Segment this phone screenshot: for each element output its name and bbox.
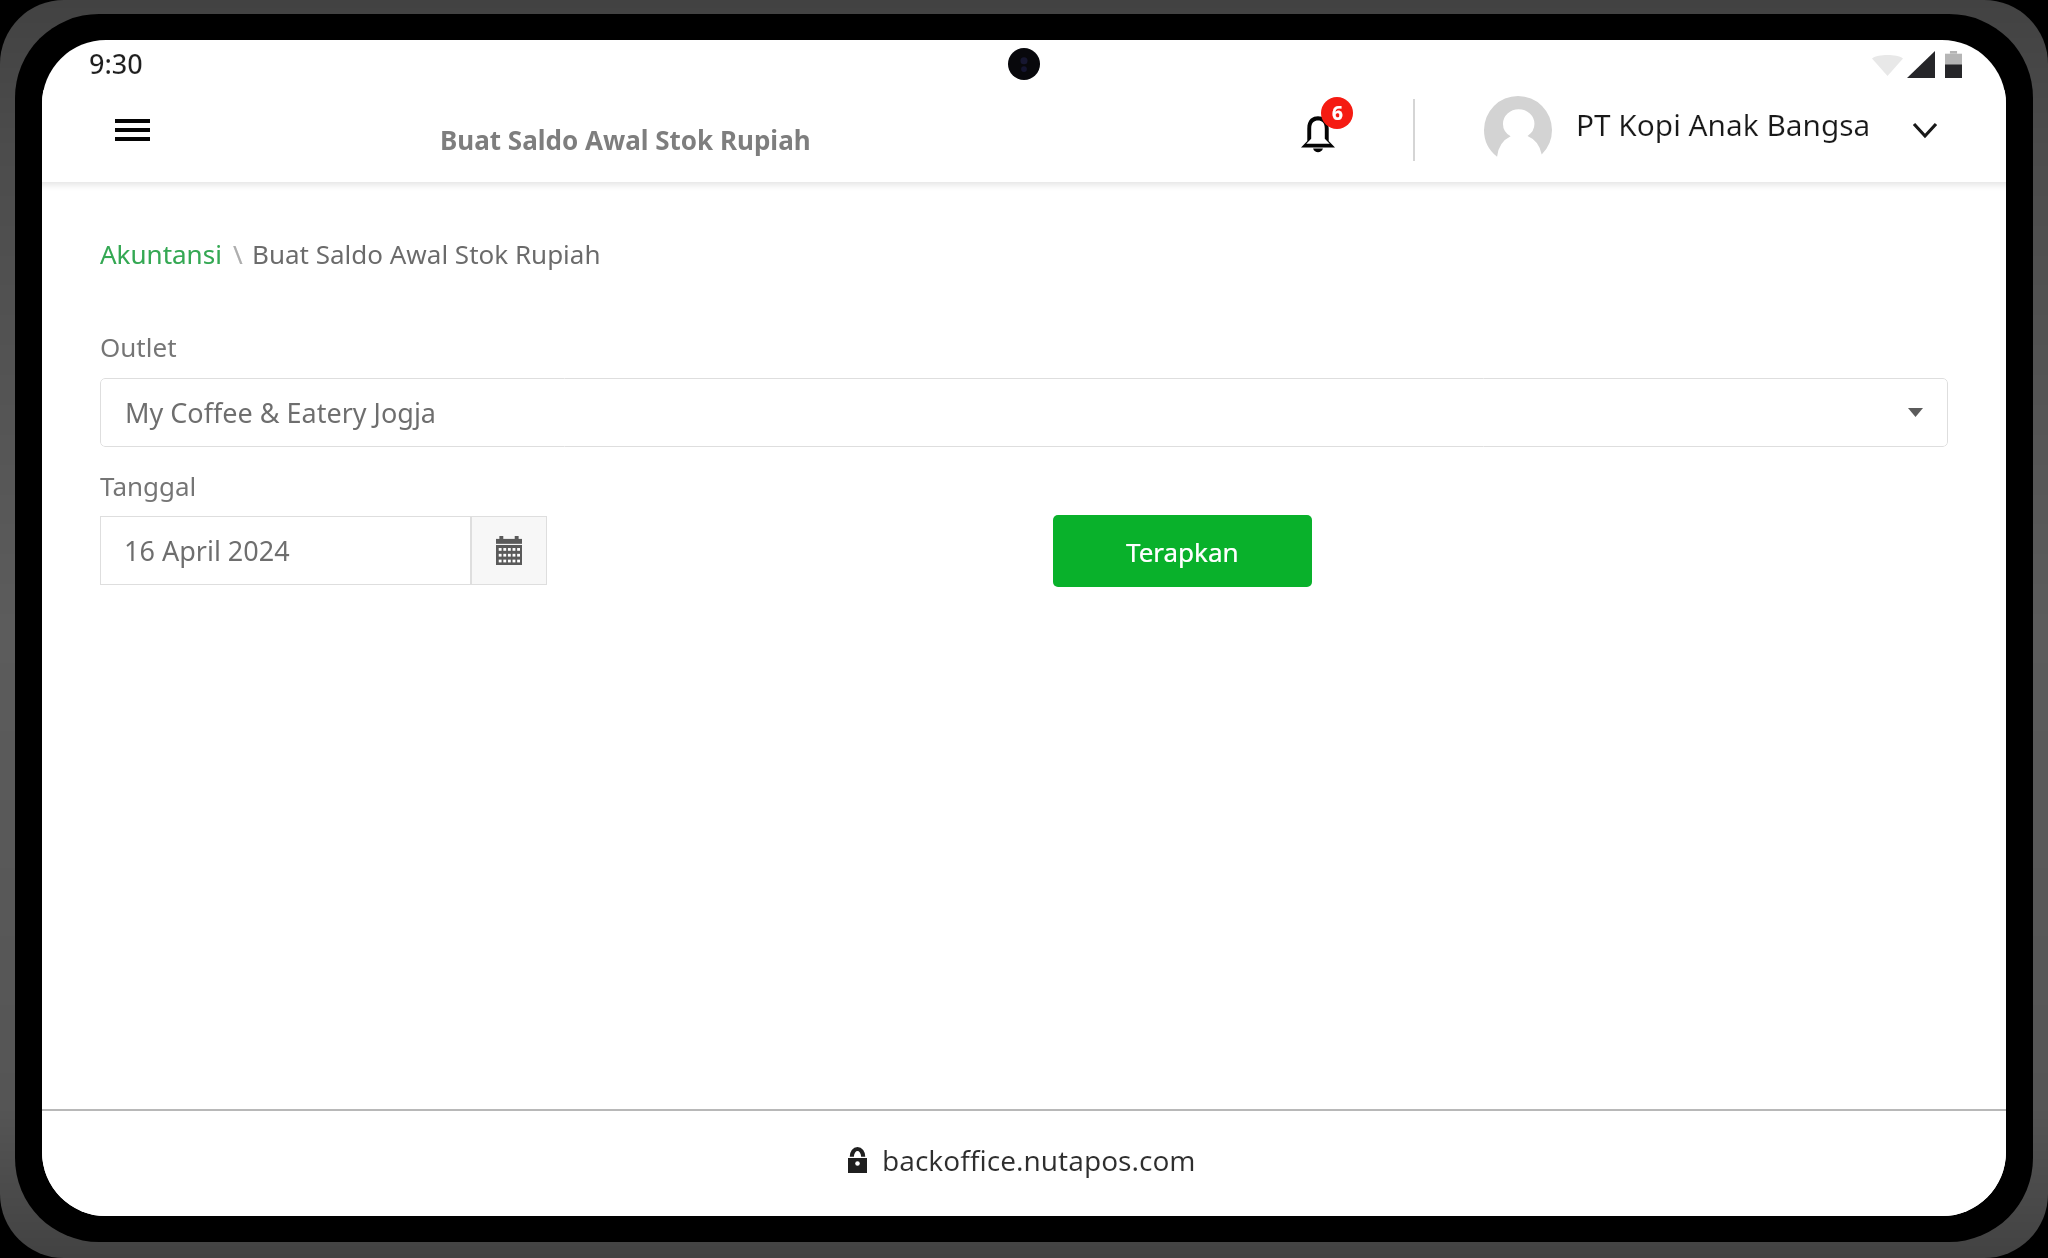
staticText: Buat Saldo Awal Stok Rupiah bbox=[252, 236, 601, 271]
button[interactable]: My Coffee & Eatery Jogja bbox=[100, 378, 1948, 447]
button[interactable]: Terapkan bbox=[1053, 515, 1312, 587]
staticText: Tanggal bbox=[100, 468, 197, 503]
staticText: \ bbox=[233, 236, 243, 271]
staticText: 16 April 2024 bbox=[124, 532, 290, 569]
button[interactable]: 16 April 2024 bbox=[100, 516, 471, 585]
staticText: Terapkan bbox=[1126, 534, 1239, 569]
button[interactable]: PT Kopi Anak Bangsa bbox=[1484, 96, 1936, 164]
staticText: backoffice.nutapos.com bbox=[882, 1141, 1196, 1179]
staticText: Outlet bbox=[100, 329, 177, 364]
button[interactable]: Menu bbox=[104, 108, 160, 164]
button[interactable]: Akuntansi bbox=[100, 236, 222, 271]
button[interactable]: Pick date bbox=[471, 516, 547, 585]
staticText: Buat Saldo Awal Stok Rupiah bbox=[440, 122, 811, 157]
staticText: My Coffee & Eatery Jogja bbox=[125, 394, 437, 431]
staticText: 6 bbox=[1332, 100, 1343, 126]
staticText: PT Kopi Anak Bangsa bbox=[1576, 104, 1871, 145]
button[interactable]: Notifications bbox=[1285, 97, 1351, 163]
staticText: 9:30 bbox=[89, 45, 143, 82]
